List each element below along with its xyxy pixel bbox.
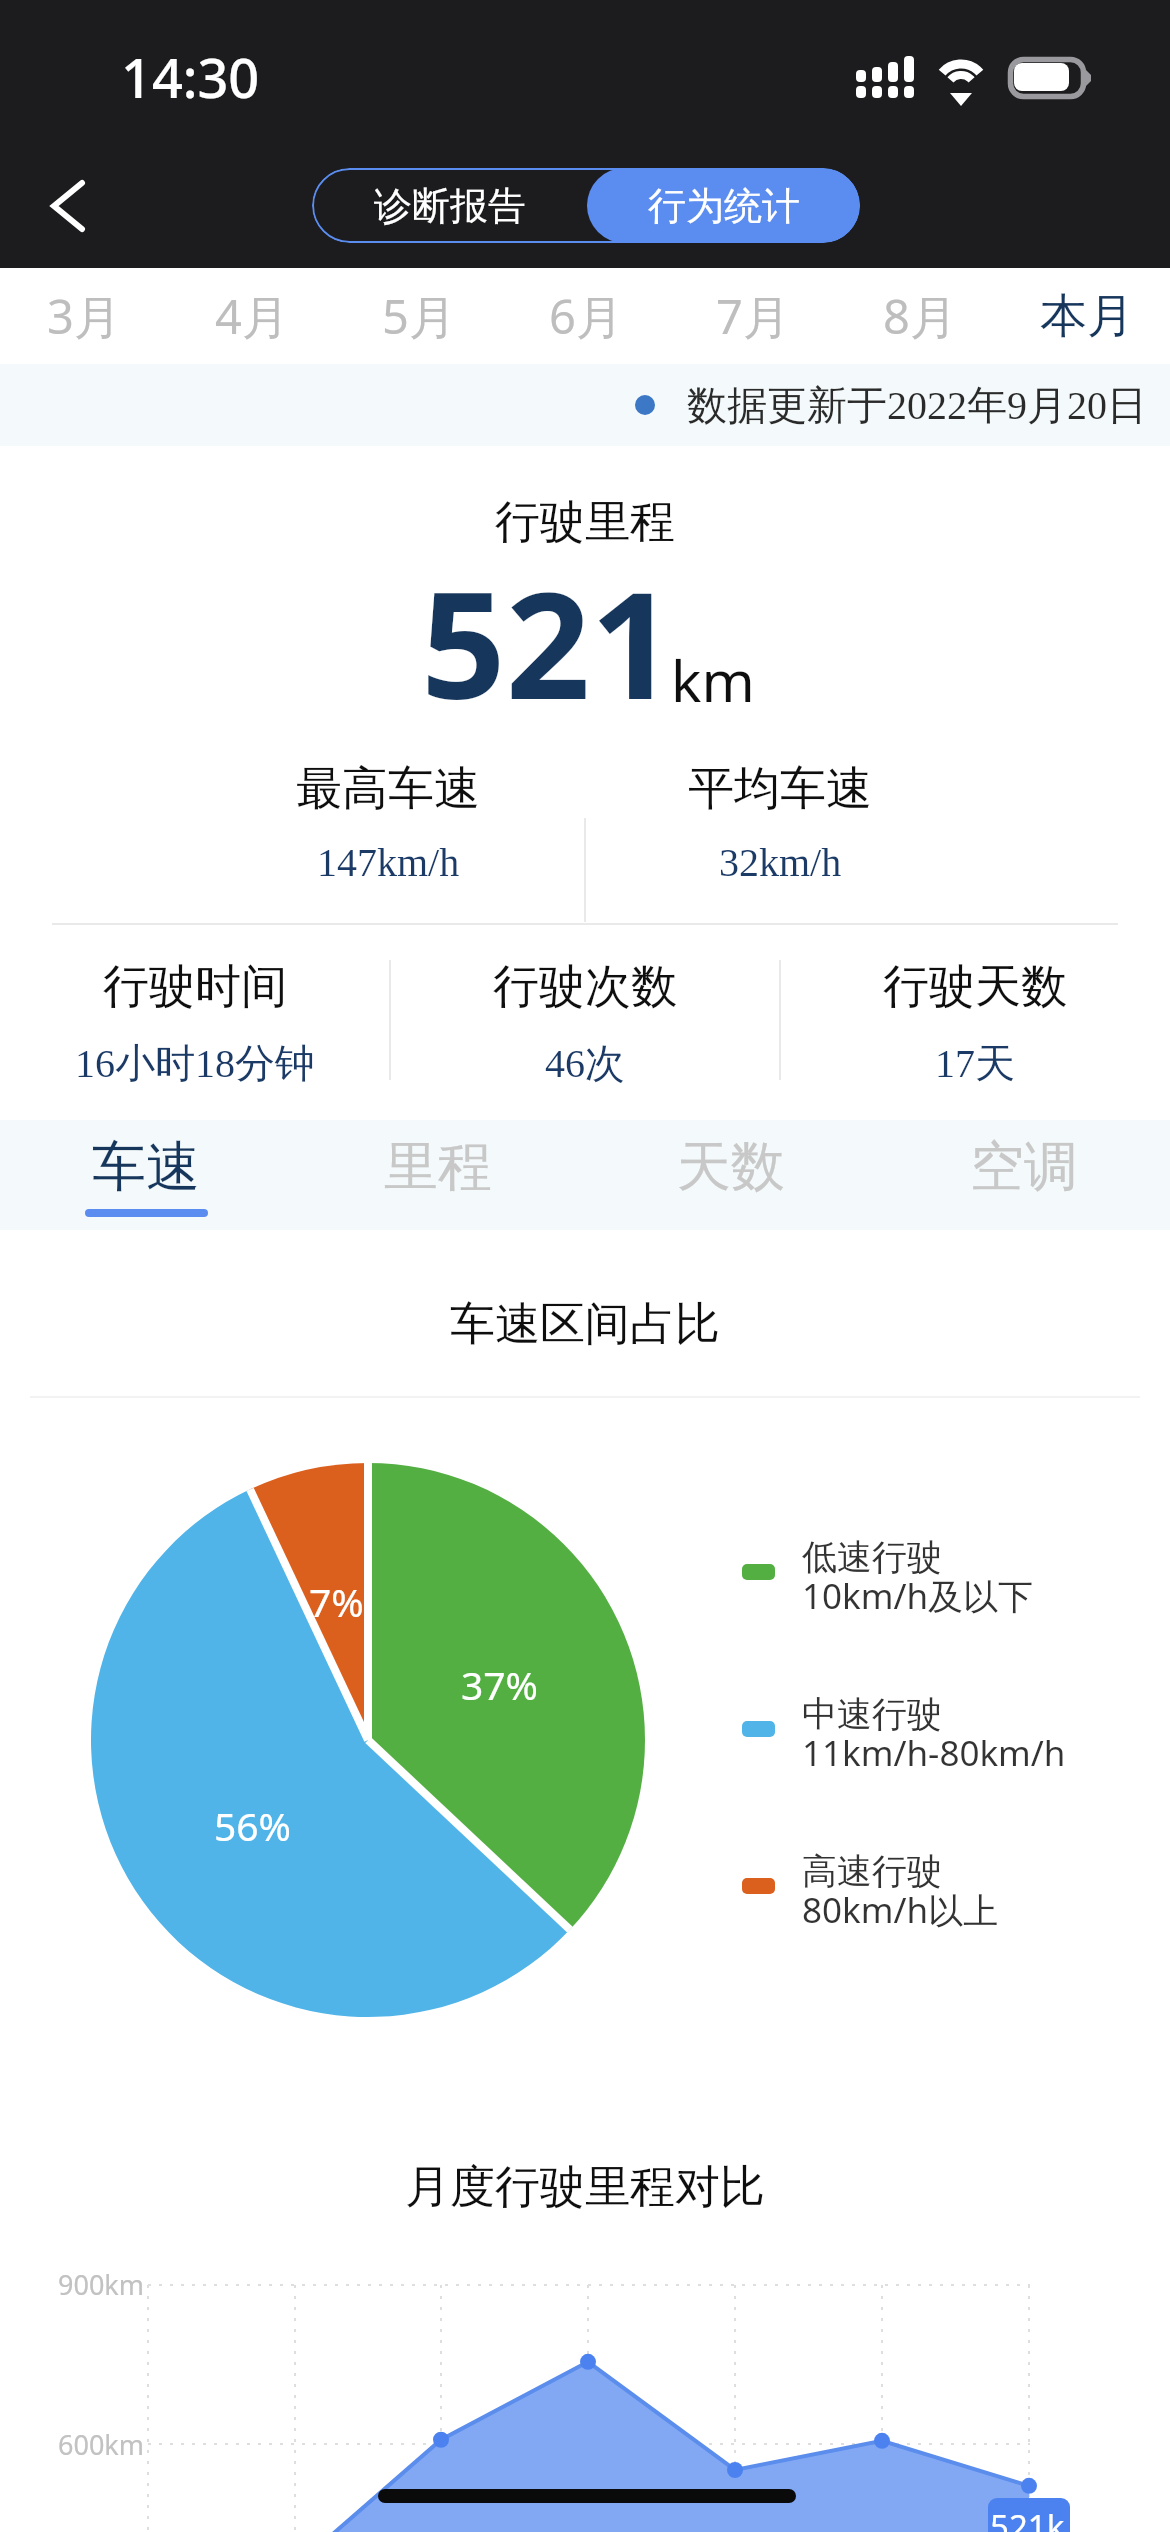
staticText: 月度行驶里程对比 bbox=[0, 2159, 1170, 2216]
staticText: 14:30 bbox=[121, 40, 260, 114]
staticText: 521 bbox=[421, 541, 675, 743]
staticText: 4月 bbox=[215, 284, 289, 348]
staticText: 17天 bbox=[935, 1038, 1015, 1088]
staticText: km bbox=[671, 641, 755, 719]
staticText: 3月 bbox=[47, 284, 121, 348]
button[interactable]: 5月 bbox=[335, 268, 502, 364]
button[interactable]: 空调 bbox=[877, 1120, 1170, 1230]
button[interactable]: Back bbox=[11, 150, 123, 262]
staticText: 8月 bbox=[883, 284, 957, 348]
button[interactable]: 里程 bbox=[292, 1120, 584, 1230]
staticText: 低速行驶 bbox=[802, 1535, 942, 1579]
button[interactable]: 行驶次数 bbox=[390, 958, 780, 1088]
button[interactable]: 行为统计 bbox=[587, 168, 860, 243]
staticText: 80km/h以上 bbox=[802, 1886, 999, 1934]
staticText: 46次 bbox=[545, 1038, 625, 1088]
button[interactable]: 平均车速 bbox=[586, 760, 974, 884]
staticText: 车速 bbox=[92, 1133, 200, 1201]
staticText: 行驶次数 bbox=[493, 958, 677, 1016]
staticText: 5月 bbox=[382, 284, 456, 348]
staticText: 数据更新于2022年9月20日 bbox=[687, 380, 1147, 430]
staticText: 最高车速 bbox=[296, 760, 480, 818]
button[interactable]: 车速 bbox=[0, 1120, 292, 1230]
staticText: 行驶时间 bbox=[103, 958, 287, 1016]
button[interactable]: 行驶时间 bbox=[0, 958, 390, 1088]
button[interactable]: 4月 bbox=[168, 268, 335, 364]
staticText: 7% bbox=[309, 1575, 364, 1628]
staticText: 高速行驶 bbox=[802, 1849, 942, 1893]
staticText: 行驶里程 bbox=[0, 494, 1170, 551]
staticText: 里程 bbox=[384, 1133, 492, 1201]
staticText: 10km/h及以下 bbox=[802, 1572, 1034, 1620]
staticText: 行驶天数 bbox=[883, 958, 1067, 1016]
staticText: 56% bbox=[214, 1799, 292, 1852]
button[interactable]: 最高车速 bbox=[194, 760, 582, 884]
staticText: 本月 bbox=[1040, 287, 1134, 346]
staticText: 车速区间占比 bbox=[0, 1296, 1170, 1353]
button[interactable]: 3月 bbox=[0, 268, 168, 364]
staticText: 147km/h bbox=[317, 840, 460, 884]
button[interactable]: 7月 bbox=[669, 268, 836, 364]
staticText: 521km bbox=[990, 2504, 1070, 2532]
staticText: 诊断报告 bbox=[374, 182, 526, 230]
button[interactable]: 本月 bbox=[1003, 268, 1170, 364]
staticText: 600km bbox=[58, 2426, 144, 2463]
staticText: 行为统计 bbox=[648, 182, 800, 230]
staticText: 900km bbox=[58, 2266, 144, 2303]
button[interactable]: 高速行驶 bbox=[742, 1831, 1132, 1941]
staticText: 6月 bbox=[549, 284, 623, 348]
staticText: 16小时18分钟 bbox=[75, 1038, 315, 1088]
button[interactable]: 低速行驶 bbox=[742, 1517, 1132, 1627]
button[interactable]: 天数 bbox=[584, 1120, 877, 1230]
staticText: 空调 bbox=[970, 1133, 1078, 1201]
button[interactable]: 行驶天数 bbox=[780, 958, 1170, 1088]
staticText: 11km/h-80km/h bbox=[802, 1729, 1066, 1777]
button[interactable]: 8月 bbox=[836, 268, 1003, 364]
staticText: 37% bbox=[461, 1658, 539, 1711]
button[interactable]: 中速行驶 bbox=[742, 1674, 1132, 1784]
staticText: 32km/h bbox=[719, 840, 842, 884]
button[interactable]: 6月 bbox=[502, 268, 669, 364]
staticText: 7月 bbox=[716, 284, 790, 348]
staticText: 平均车速 bbox=[688, 760, 872, 818]
staticText: 中速行驶 bbox=[802, 1692, 942, 1736]
staticText: 天数 bbox=[677, 1133, 785, 1201]
button[interactable]: 诊断报告 bbox=[312, 168, 587, 243]
